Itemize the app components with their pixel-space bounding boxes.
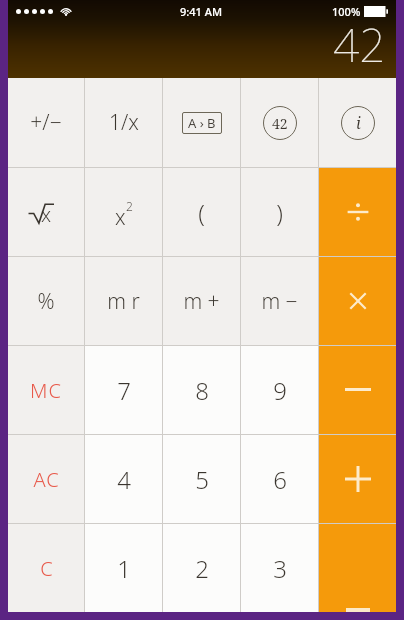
- staticText: C: [40, 555, 53, 582]
- button[interactable]: Equals: [319, 524, 396, 612]
- staticText: +/−: [30, 108, 62, 137]
- button[interactable]: +/−: [8, 78, 84, 167]
- staticText: 6: [273, 463, 287, 496]
- button[interactable]: 3: [241, 524, 318, 612]
- staticText: m −: [261, 287, 298, 316]
- button[interactable]: m −: [241, 257, 318, 345]
- staticText: x: [115, 203, 126, 232]
- staticText: 5: [195, 463, 209, 496]
- button[interactable]: Info: [319, 78, 396, 167]
- button[interactable]: Plus: [319, 435, 396, 523]
- button[interactable]: ): [241, 168, 318, 256]
- staticText: 2: [195, 552, 209, 585]
- button[interactable]: Minus: [319, 346, 396, 434]
- button[interactable]: 1/x: [85, 78, 162, 167]
- button[interactable]: x: [85, 168, 162, 256]
- button[interactable]: x: [8, 168, 84, 256]
- staticText: 42: [272, 114, 288, 133]
- staticText: 7: [117, 374, 131, 407]
- staticText: AC: [33, 466, 60, 493]
- staticText: 2: [126, 198, 133, 214]
- button[interactable]: AC: [8, 435, 84, 523]
- staticText: 9:41 AM: [180, 4, 223, 19]
- button[interactable]: m +: [163, 257, 240, 345]
- staticText: 3: [273, 552, 287, 585]
- button[interactable]: Multiply: [319, 257, 396, 345]
- staticText: 9: [273, 374, 287, 407]
- button[interactable]: 2: [163, 524, 240, 612]
- button[interactable]: 9: [241, 346, 318, 434]
- button[interactable]: m r: [85, 257, 162, 345]
- staticText: m r: [107, 287, 140, 316]
- staticText: 100%: [332, 4, 361, 19]
- button[interactable]: Memory 42: [241, 78, 318, 167]
- staticText: 4: [117, 463, 131, 496]
- button[interactable]: 7: [85, 346, 162, 434]
- staticText: i: [356, 112, 361, 134]
- button[interactable]: Swap A and B: [163, 78, 240, 167]
- staticText: A › B: [188, 114, 216, 132]
- staticText: %: [37, 287, 55, 316]
- staticText: m +: [183, 287, 220, 316]
- button[interactable]: Divide: [319, 168, 396, 256]
- staticText: (: [198, 196, 205, 229]
- button[interactable]: C: [8, 524, 84, 612]
- staticText: 42: [333, 13, 386, 76]
- staticText: 8: [195, 374, 209, 407]
- staticText: x: [41, 201, 52, 228]
- button[interactable]: (: [163, 168, 240, 256]
- button[interactable]: MC: [8, 346, 84, 434]
- button[interactable]: 8: [163, 346, 240, 434]
- button[interactable]: 5: [163, 435, 240, 523]
- button[interactable]: %: [8, 257, 84, 345]
- button[interactable]: 6: [241, 435, 318, 523]
- staticText: 1: [117, 552, 131, 585]
- button[interactable]: 1: [85, 524, 162, 612]
- staticText: 1/x: [109, 108, 139, 137]
- staticText: ): [276, 196, 283, 229]
- staticText: MC: [30, 377, 62, 404]
- button[interactable]: 4: [85, 435, 162, 523]
